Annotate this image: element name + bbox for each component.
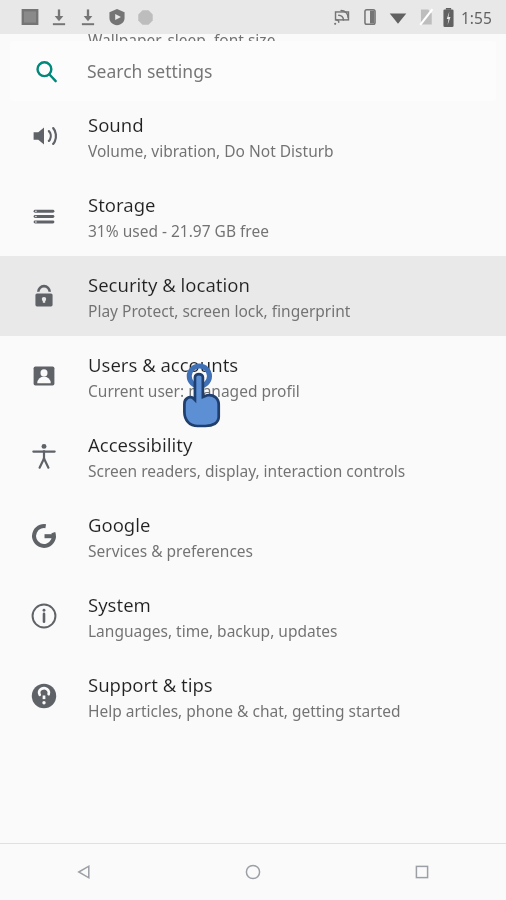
staticText: Current user: managed profil: [88, 380, 300, 401]
button[interactable]: Recents: [337, 844, 506, 900]
staticText: Wallpaper, sleep, font size: [88, 29, 276, 50]
button[interactable]: Security & location: [0, 256, 506, 336]
staticText: System: [88, 592, 151, 617]
staticText: Users & accounts: [88, 352, 239, 377]
staticText: Storage: [88, 192, 156, 217]
button[interactable]: Display: [0, 34, 506, 96]
staticText: Google: [88, 512, 151, 537]
button[interactable]: System: [0, 576, 506, 656]
staticText: Display: [88, 1, 152, 26]
button[interactable]: Support & tips: [0, 656, 506, 736]
staticText: Screen readers, display, interaction con…: [88, 460, 406, 481]
button[interactable]: Users & accounts: [0, 336, 506, 416]
button[interactable]: Google: [0, 496, 506, 576]
button[interactable]: Search: [10, 41, 496, 101]
staticText: Volume, vibration, Do Not Disturb: [88, 140, 334, 161]
staticText: Languages, time, backup, updates: [88, 620, 338, 641]
staticText: Search settings: [87, 59, 213, 83]
staticText: Security & location: [88, 272, 250, 297]
staticText: Help articles, phone & chat, getting sta…: [88, 700, 401, 721]
staticText: 31% used - 21.97 GB free: [88, 220, 269, 241]
other: Search: [35, 60, 58, 83]
staticText: 1:55: [461, 7, 492, 28]
button[interactable]: Storage: [0, 176, 506, 256]
staticText: Services & preferences: [88, 540, 253, 561]
staticText: Sound: [88, 112, 144, 137]
staticText: Accessibility: [88, 432, 193, 457]
button[interactable]: Accessibility: [0, 416, 506, 496]
button[interactable]: Back: [0, 844, 168, 900]
button[interactable]: Sound: [0, 96, 506, 176]
staticText: Play Protect, screen lock, fingerprint: [88, 300, 351, 321]
button[interactable]: Home: [168, 844, 337, 900]
staticText: Support & tips: [88, 672, 213, 697]
